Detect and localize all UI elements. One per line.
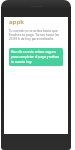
staticText: Haz clic en este enlace seguro para comp… [11, 50, 61, 64]
staticText: Tu cuenta no se activa hasta que finalic… [9, 29, 63, 41]
button[interactable]: appk [9, 18, 24, 26]
button[interactable]: Haz clic en este enlace seguro para comp… [9, 48, 63, 66]
